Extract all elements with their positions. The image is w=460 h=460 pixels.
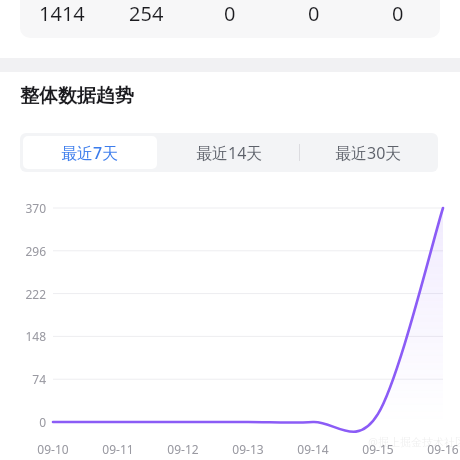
button[interactable]: 1414	[20, 0, 104, 38]
staticText: 整体数据趋势	[20, 84, 134, 108]
staticText: 09-14	[297, 441, 329, 457]
staticText: 296	[25, 243, 46, 259]
staticText: 0	[224, 0, 236, 27]
staticText: 09-15	[362, 441, 394, 457]
staticText: 370	[25, 200, 46, 216]
staticText: 最近30天	[335, 142, 402, 164]
staticText: 254	[129, 0, 164, 27]
button[interactable]: 0	[272, 0, 356, 38]
button[interactable]: 0	[188, 0, 272, 38]
staticText: @掘上掘金技术社区	[368, 434, 460, 449]
staticText: 09-11	[102, 441, 134, 457]
button[interactable]: 254	[104, 0, 188, 38]
staticText: 09-12	[167, 441, 199, 457]
staticText: 0	[392, 0, 404, 27]
button[interactable]: 最近14天	[160, 133, 299, 172]
staticText: 0	[39, 414, 46, 430]
button[interactable]: 0	[356, 0, 440, 38]
staticText: 222	[25, 286, 46, 302]
staticText: 0	[308, 0, 320, 27]
staticText: 09-16	[427, 441, 459, 457]
staticText: 1414	[39, 0, 85, 27]
staticText: 最近7天	[61, 142, 119, 164]
staticText: 09-10	[37, 441, 69, 457]
button[interactable]: 最近7天	[23, 136, 157, 169]
button[interactable]: 最近30天	[299, 133, 438, 172]
staticText: 09-13	[232, 441, 264, 457]
staticText: 最近14天	[196, 142, 263, 164]
staticText: 74	[32, 371, 46, 387]
staticText: 148	[25, 328, 46, 344]
